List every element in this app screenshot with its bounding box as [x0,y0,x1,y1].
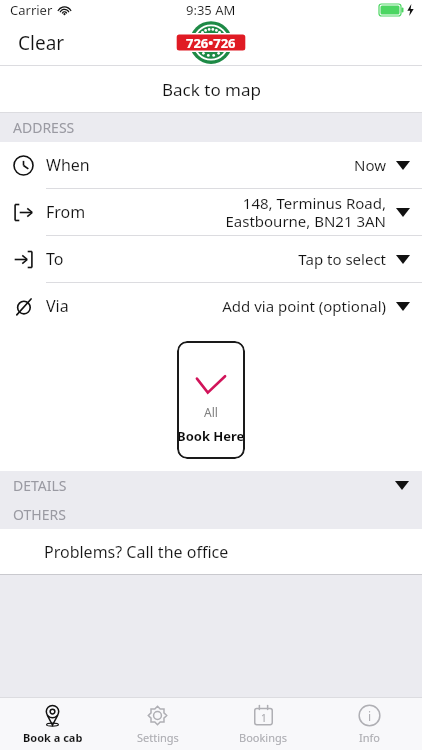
staticText: 726•726 [186,34,236,52]
staticText: Info [359,730,380,745]
staticText: To [46,248,64,270]
button[interactable]: Clear [0,24,83,62]
button[interactable]: DETAILS [0,471,422,500]
staticText: Bookings [239,730,288,745]
button[interactable]: 1 [210,698,316,750]
staticText: All [204,404,218,420]
staticText: Now [354,155,386,175]
button[interactable]: i [316,698,422,750]
staticText: DETAILS [13,476,67,495]
staticText: From [46,201,86,223]
staticText: When [46,154,90,176]
staticText: Add via point (optional) [222,296,386,316]
staticText: OTHERS [13,505,66,524]
staticText: Back to map [162,78,261,101]
staticText: Book a cab [23,730,83,745]
staticText: 1 [261,711,267,725]
staticText: Clear [18,30,65,56]
button[interactable]: All [177,341,245,459]
staticText: 148, Terminus Road, Eastbourne, BN21 3AN [225,193,386,231]
button[interactable]: Via [0,283,422,329]
button[interactable]: To [0,236,422,282]
button[interactable]: Settings [105,698,210,750]
staticText: Tap to select [298,249,386,269]
button[interactable]: Problems? Call the office [0,529,422,574]
staticText: i [368,708,372,724]
staticText: Settings [137,730,179,745]
staticText: ADDRESS [13,118,75,137]
staticText: Carrier [10,1,53,19]
button[interactable]: Back to map [0,66,422,112]
button[interactable]: From [0,189,422,235]
staticText: Problems? Call the office [44,541,229,563]
staticText: Book Here [177,427,245,445]
staticText: Via [46,295,69,317]
button[interactable]: Book a cab [0,698,105,750]
button[interactable]: When [0,142,422,188]
staticText: 9:35 AM [186,1,236,19]
